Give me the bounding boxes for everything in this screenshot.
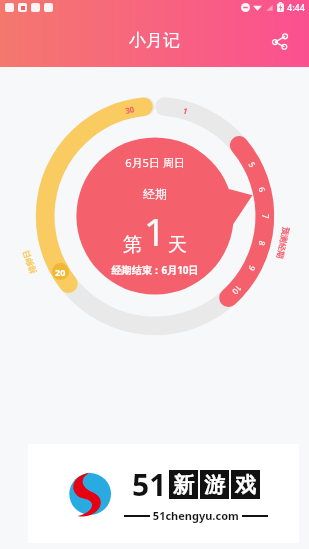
button[interactable]: 分享 xyxy=(263,24,297,58)
staticText: 小月记 xyxy=(129,30,180,51)
staticText: 游 xyxy=(204,472,225,498)
staticText: 第 xyxy=(123,233,142,257)
staticText: 7 xyxy=(260,214,271,219)
staticText: 1 xyxy=(182,104,189,116)
staticText: 30 xyxy=(124,103,136,116)
staticText: 预测经期 xyxy=(275,226,291,260)
staticText: 4:44 xyxy=(287,1,305,13)
staticText: 1 xyxy=(144,205,166,257)
staticText: 经期结束：6月10日 xyxy=(111,263,199,277)
staticText: 51chengyu.com xyxy=(150,508,242,523)
staticText: 9 xyxy=(246,264,259,273)
staticText: 20 xyxy=(55,266,66,278)
staticText: 新 xyxy=(173,472,194,498)
staticText: 经期 xyxy=(143,186,167,201)
staticText: 5 xyxy=(246,160,259,169)
staticText: 8 xyxy=(257,240,268,247)
button[interactable]: 5 xyxy=(29,90,281,342)
staticText: 天 xyxy=(168,233,187,257)
staticText: 6 xyxy=(257,186,268,193)
staticText: 51 xyxy=(132,464,167,505)
staticText: 10 xyxy=(230,283,244,298)
staticText: 排卵日 xyxy=(20,249,38,275)
staticText: 戏 xyxy=(235,472,256,498)
staticText: 6月5日 周日 xyxy=(125,155,185,170)
